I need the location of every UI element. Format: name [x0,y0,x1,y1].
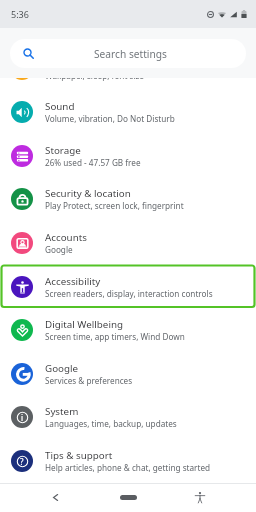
staticText: Sound [45,100,75,113]
staticText: 5:36 [11,8,29,20]
staticText: Tips & support [45,449,113,462]
staticText: Storage [45,144,81,157]
button[interactable]: i [0,395,256,439]
staticText: Accessibility [45,275,101,288]
button[interactable]: Back [43,485,67,509]
button[interactable]: Sound [0,90,256,134]
button[interactable]: Accounts [0,221,256,265]
staticText: System [45,405,79,418]
button[interactable]: Home [110,487,146,507]
staticText: Volume, vibration, Do Not Disturb [45,113,175,124]
staticText: 26% used - 47.57 GB free [45,157,141,168]
button[interactable]: Digital Wellbeing [0,308,256,352]
button[interactable]: Search settings [10,39,246,68]
staticText: ? [20,456,24,467]
staticText: Screen readers, display, interaction con… [45,288,213,299]
staticText: Screen time, app timers, Wind Down [45,331,185,342]
staticText: Search settings [94,47,167,61]
staticText: Security & location [45,187,131,200]
button[interactable]: Display [0,47,256,91]
button[interactable]: Accessibility menu [188,485,212,509]
staticText: Google [45,362,79,375]
staticText: Accounts [45,231,87,244]
button[interactable]: Security & location [0,177,256,221]
staticText: Google [45,244,73,255]
staticText: Services & preferences [45,375,133,386]
staticText: Wallpaper, sleep, font size [45,70,144,81]
staticText: Play Protect, screen lock, fingerprint [45,200,184,211]
staticText: Digital Wellbeing [45,318,123,331]
button[interactable]: Google [0,352,256,396]
button[interactable]: Accessibility [0,265,256,309]
button[interactable]: ? [0,439,256,483]
staticText: i [21,412,24,423]
staticText: Languages, time, backup, updates [45,418,177,429]
staticText: Help articles, phone & chat, getting sta… [45,462,211,473]
button[interactable]: Storage [0,134,256,178]
